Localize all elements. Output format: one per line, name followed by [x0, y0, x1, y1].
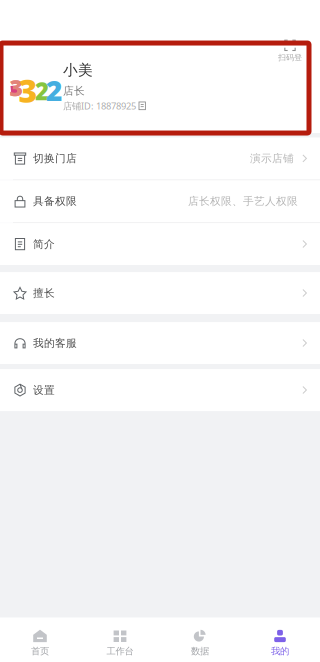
button[interactable]: 简介 [0, 223, 320, 265]
staticText: 店长 [63, 84, 85, 98]
staticText: 我的客服 [33, 336, 77, 350]
staticText: 擅长 [33, 286, 55, 300]
staticText: 简介 [33, 237, 55, 251]
staticText: 演示店铺 [250, 152, 294, 165]
staticText: 具备权限 [33, 195, 77, 208]
staticText: 3 [18, 69, 37, 111]
staticText: 店铺ID: 18878925 [63, 100, 136, 112]
staticText: 3 [9, 72, 22, 103]
staticText: 数据 [191, 645, 209, 657]
button[interactable]: 设置 [0, 369, 320, 411]
button[interactable]: 具备权限 [0, 180, 320, 222]
staticText: 店长权限、手艺人权限 [188, 195, 298, 208]
staticText: 小美 [63, 61, 93, 79]
staticText: 3 [9, 72, 22, 103]
staticText: 首页 [31, 645, 49, 657]
staticText: 我的 [271, 645, 289, 657]
button[interactable]: 擅长 [0, 272, 320, 314]
button[interactable]: 工作台 [80, 617, 160, 662]
button[interactable]: 扫码登录 [270, 37, 310, 65]
staticText: 2 [35, 75, 49, 107]
staticText: 切换门店 [33, 152, 77, 165]
staticText: 扫码登 [278, 53, 302, 62]
button[interactable]: 切换门店 [0, 137, 320, 179]
button[interactable]: 数据 [160, 617, 240, 662]
staticText: 2 [46, 71, 62, 109]
button[interactable]: 我的 [240, 617, 320, 662]
button[interactable]: 我的客服 [0, 322, 320, 364]
staticText: 工作台 [106, 645, 133, 657]
staticText: 设置 [33, 383, 55, 397]
button[interactable]: 首页 [0, 617, 80, 662]
